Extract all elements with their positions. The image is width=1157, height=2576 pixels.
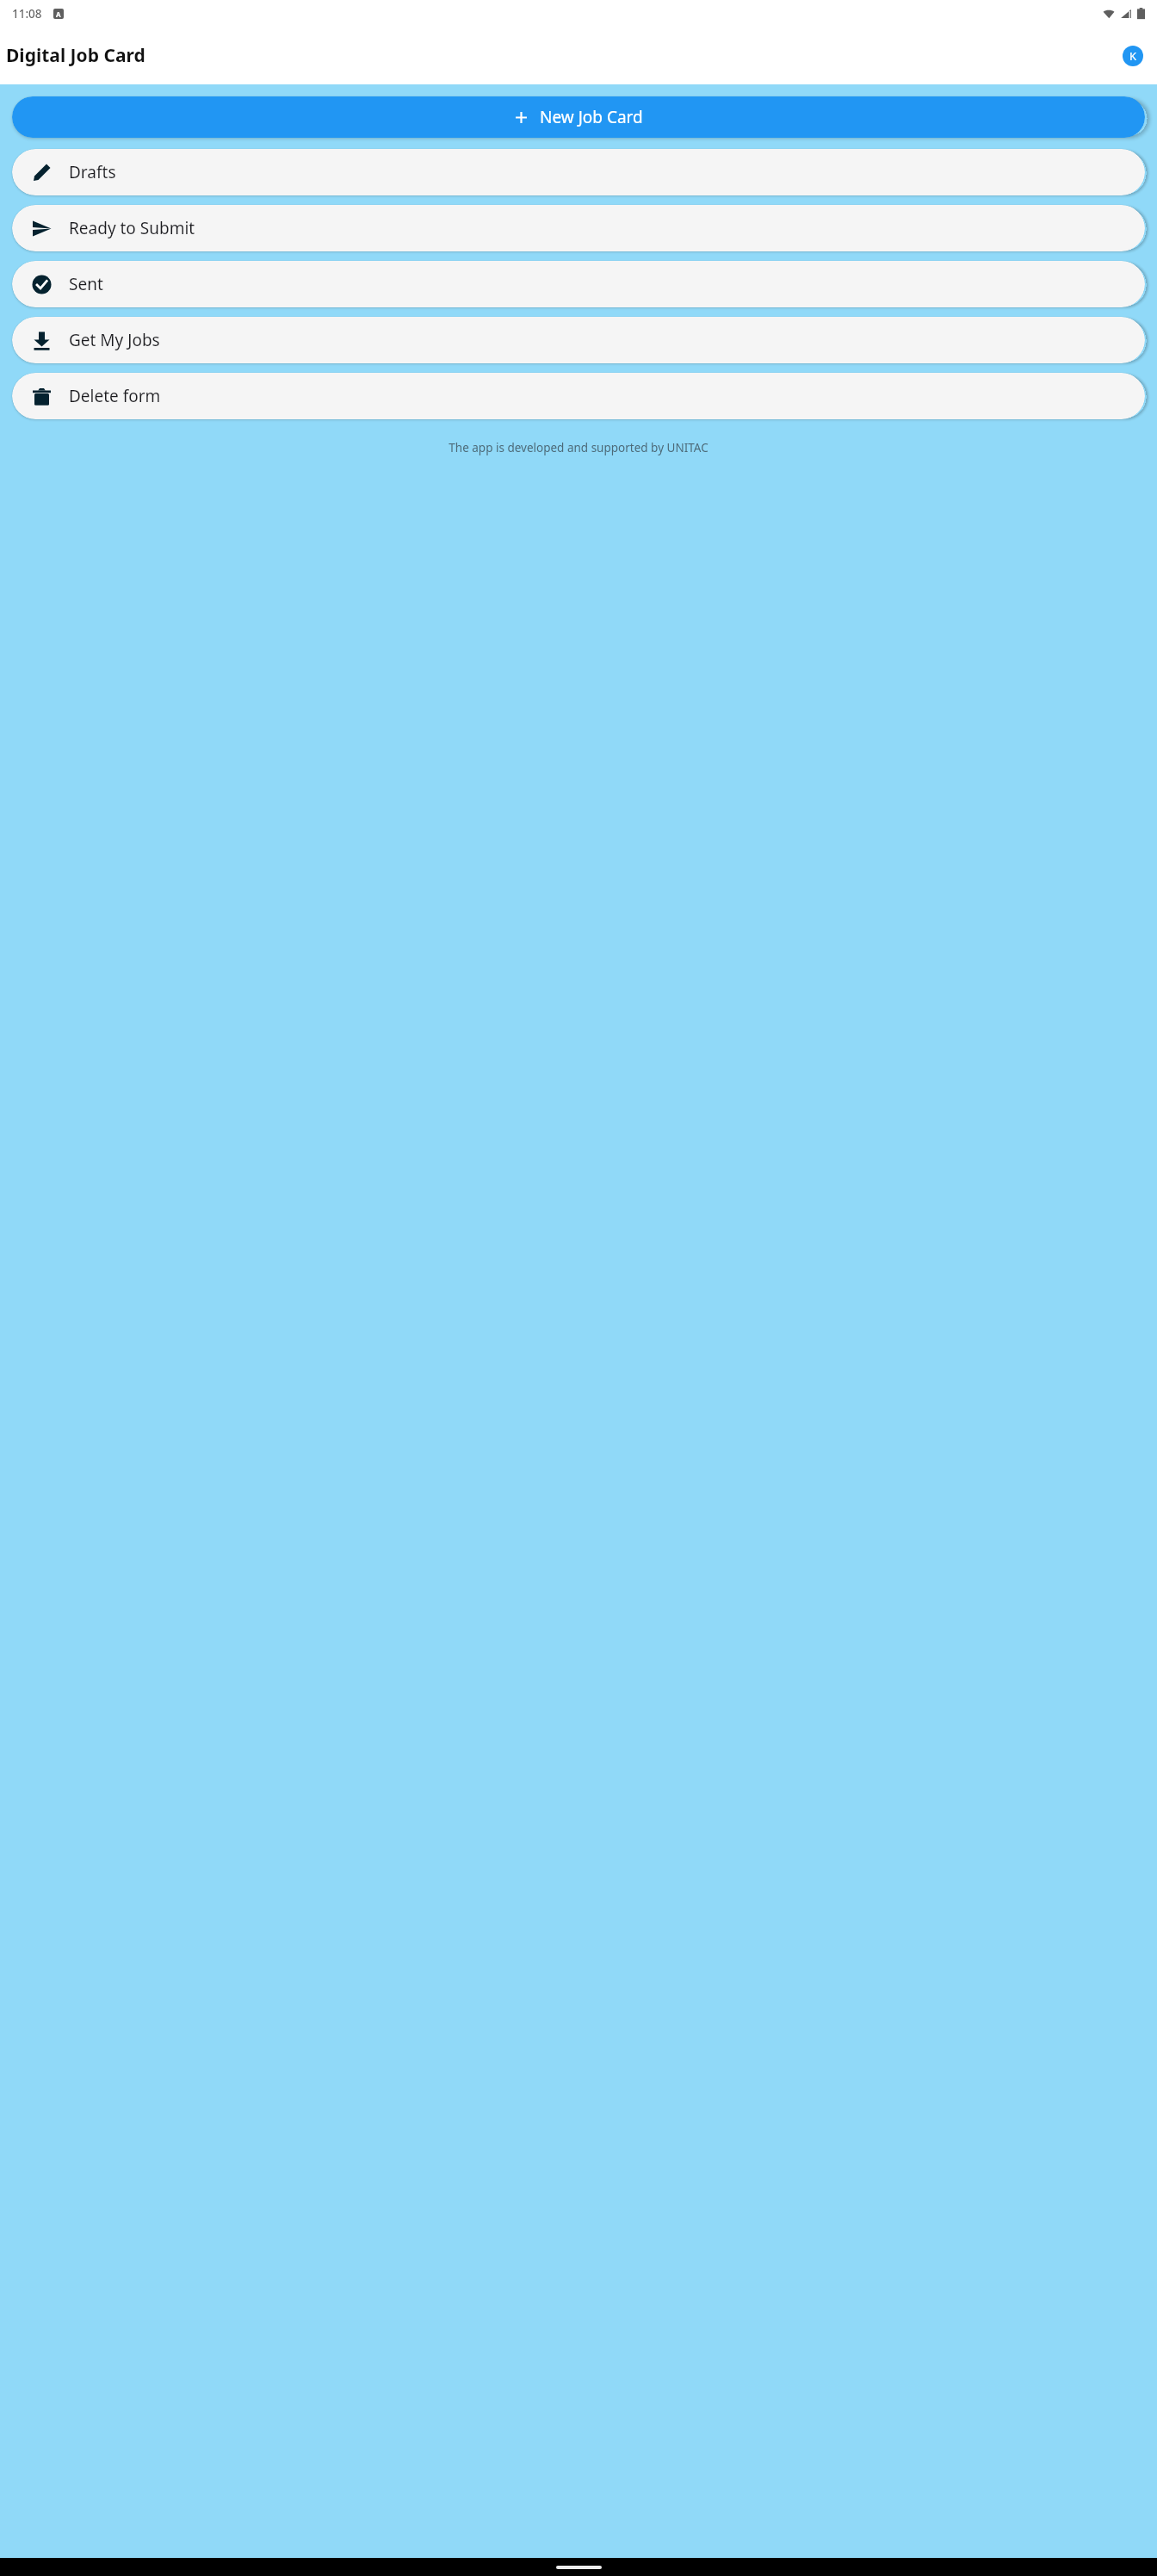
button[interactable]: Ready to Submit	[12, 205, 1145, 251]
staticText: Delete form	[69, 385, 161, 407]
button[interactable]: Account	[1123, 46, 1143, 66]
button[interactable]: New Job Card	[12, 96, 1145, 138]
staticText: Get My Jobs	[69, 329, 160, 351]
staticText: Digital Job Card	[6, 43, 145, 68]
staticText: Drafts	[69, 161, 116, 183]
staticText: New Job Card	[540, 106, 643, 128]
staticText: Sent	[69, 273, 103, 295]
staticText: A	[56, 9, 61, 19]
button[interactable]: Sent	[12, 261, 1145, 307]
staticText: 11:08	[12, 6, 42, 22]
button[interactable]: Delete form	[12, 373, 1145, 419]
staticText: K	[1129, 48, 1137, 64]
staticText: The app is developed and supported by UN…	[0, 440, 1157, 455]
button[interactable]: Drafts	[12, 149, 1145, 195]
staticText: Ready to Submit	[69, 217, 195, 239]
button[interactable]: Get My Jobs	[12, 317, 1145, 363]
